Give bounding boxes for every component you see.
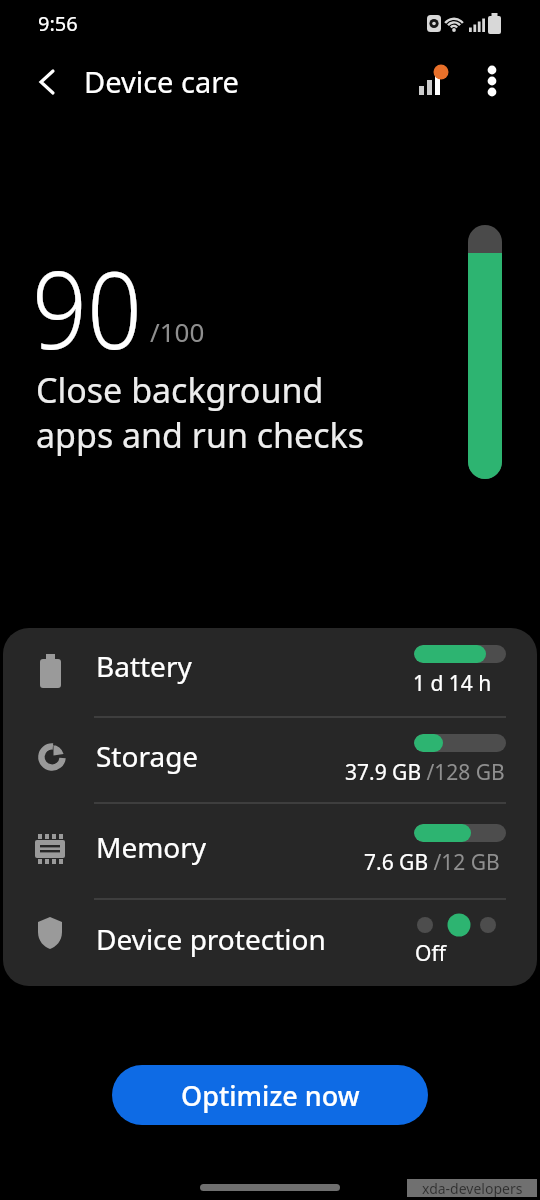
button[interactable] (3, 716, 537, 802)
staticText: 37.9 GB /128 GB (345, 758, 505, 787)
staticText: 1 d 14 h (413, 669, 492, 698)
staticText: 9:56 (38, 10, 78, 37)
staticText: Device protection (96, 920, 326, 958)
button[interactable]: Optimize now (112, 1065, 428, 1125)
button[interactable] (3, 802, 537, 898)
staticText: Device care (84, 62, 239, 101)
button[interactable] (414, 60, 456, 102)
staticText: 7.6 GB /12 GB (364, 848, 500, 877)
staticText: Storage (96, 737, 199, 775)
button[interactable] (30, 64, 66, 100)
staticText: /100 (150, 314, 205, 349)
staticText: Optimize now (181, 1077, 360, 1114)
staticText: xda-developers (422, 1179, 523, 1197)
button[interactable] (474, 60, 514, 102)
staticText: Close background apps and run checks (36, 367, 365, 457)
staticText: Off (415, 939, 446, 968)
staticText: Battery (96, 647, 192, 685)
staticText: Memory (96, 828, 207, 866)
button[interactable] (3, 898, 537, 986)
button[interactable] (3, 628, 537, 716)
staticText: 90 (32, 235, 143, 381)
